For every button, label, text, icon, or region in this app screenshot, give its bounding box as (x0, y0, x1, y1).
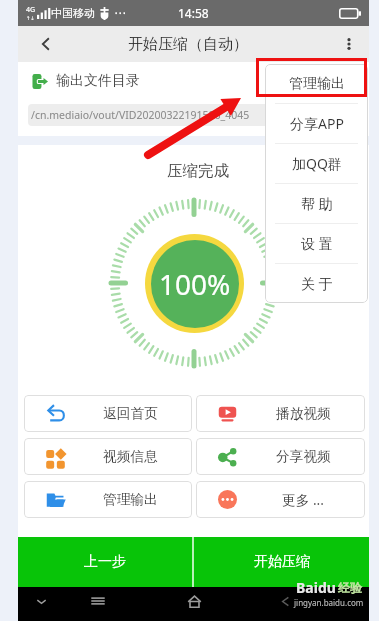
staticText: 管理输出 (103, 491, 158, 508)
button[interactable]: Home (180, 587, 208, 615)
button[interactable]: More options (333, 28, 365, 60)
button[interactable]: Recent apps (84, 587, 112, 615)
staticText: jingyan.baidu.com (294, 597, 364, 608)
staticText: 返回首页 (103, 405, 158, 422)
staticText: 压缩完成 (167, 161, 229, 181)
staticText: 分享APP (290, 114, 344, 133)
staticText: ↑↓ (26, 15, 35, 21)
button[interactable]: Back (271, 587, 299, 615)
button[interactable]: 设 置 (265, 224, 368, 263)
staticText: 设 置 (301, 234, 333, 253)
button[interactable]: Hide keyboard (27, 587, 55, 615)
button[interactable]: 关 于 (265, 264, 368, 303)
staticText: 100% (159, 265, 231, 303)
staticText: 开始压缩（自动） (128, 35, 248, 54)
staticText: /cn.mediaio/vout/VID20200322191506_4045 (31, 108, 250, 122)
button[interactable]: 开始压缩 (194, 537, 369, 587)
staticText: Baidu (296, 578, 336, 597)
staticText: 上一步 (84, 553, 126, 571)
staticText: 视频信息 (103, 448, 158, 465)
button[interactable]: 管理输出 (265, 64, 368, 103)
button[interactable]: 视频信息 (24, 438, 192, 475)
staticText: 经验 (338, 580, 362, 595)
button[interactable]: 分享APP (265, 104, 368, 143)
button[interactable]: 返回首页 (24, 395, 192, 432)
button[interactable]: 管理输出 (24, 481, 192, 518)
button[interactable]: 帮 助 (265, 184, 368, 223)
staticText: 加QQ群 (292, 154, 342, 173)
staticText: 开始压缩 (254, 553, 310, 571)
staticText: 分享视频 (276, 448, 331, 465)
button[interactable]: 上一步 (18, 537, 192, 587)
staticText: 更多 ... (282, 490, 324, 509)
staticText: 中国移动 (51, 6, 95, 20)
staticText: ⋯ (114, 6, 126, 20)
staticText: 14:58 (178, 5, 209, 21)
button[interactable]: 播放视频 (196, 395, 365, 432)
staticText: 输出文件目录 (56, 72, 140, 90)
button[interactable]: 分享视频 (196, 438, 365, 475)
button[interactable]: 更多 ... (196, 481, 365, 518)
button[interactable]: 加QQ群 (265, 144, 368, 183)
staticText: 播放视频 (276, 405, 331, 422)
staticText: 管理输出 (289, 75, 345, 93)
button[interactable]: Back (30, 28, 62, 60)
staticText: 关 于 (301, 274, 333, 293)
staticText: 4G (26, 5, 36, 15)
staticText: 帮 助 (301, 194, 333, 213)
